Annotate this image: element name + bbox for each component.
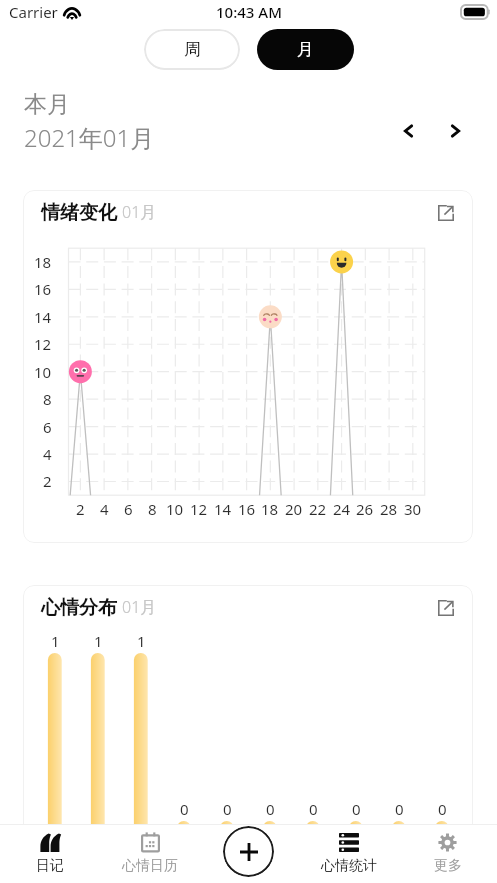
staticText: 16 xyxy=(34,279,52,299)
staticText: 1 xyxy=(51,631,60,651)
staticText: 8 xyxy=(148,499,157,519)
staticText: 12 xyxy=(190,499,208,519)
staticText: 01月 xyxy=(122,201,157,223)
button[interactable]: Open full screen xyxy=(434,201,458,225)
button[interactable]: 心情日历 xyxy=(100,824,200,883)
staticText: 周 xyxy=(184,39,201,60)
staticText: 26 xyxy=(356,499,374,519)
staticText: 0 xyxy=(309,799,318,819)
staticText: 0 xyxy=(395,799,404,819)
staticText: 4 xyxy=(43,444,52,464)
staticText: 1 xyxy=(94,631,103,651)
staticText: 更多 xyxy=(434,857,462,875)
button[interactable]: Next month xyxy=(442,118,468,144)
staticText: 月 xyxy=(297,39,314,60)
staticText: 0 xyxy=(438,799,447,819)
staticText: 30 xyxy=(404,499,422,519)
staticText: 18 xyxy=(261,499,279,519)
staticText: 心情日历 xyxy=(122,857,178,875)
staticText: 18 xyxy=(34,252,52,272)
staticText: 0 xyxy=(352,799,361,819)
staticText: 10 xyxy=(34,362,52,382)
staticText: 14 xyxy=(214,499,232,519)
staticText: 0 xyxy=(266,799,275,819)
staticText: 20 xyxy=(285,499,303,519)
staticText: 01月 xyxy=(122,596,157,618)
button[interactable]: Add entry xyxy=(223,826,274,877)
staticText: 心情统计 xyxy=(321,857,377,875)
staticText: 8 xyxy=(43,389,52,409)
staticText: 28 xyxy=(380,499,398,519)
button[interactable]: 日记 xyxy=(0,824,100,883)
staticText: 10:43 AM xyxy=(216,2,282,22)
staticText: 10 xyxy=(166,499,184,519)
button[interactable]: 月 xyxy=(257,29,354,70)
button[interactable]: 更多 xyxy=(398,824,497,883)
staticText: 6 xyxy=(124,499,133,519)
staticText: 心情分布 xyxy=(41,596,117,620)
staticText: 日记 xyxy=(36,857,64,875)
staticText: 6 xyxy=(43,417,52,437)
staticText: 情绪变化 xyxy=(41,201,117,225)
staticText: 2021年01月 xyxy=(24,121,155,154)
staticText: Carrier xyxy=(9,2,58,22)
staticText: 0 xyxy=(223,799,232,819)
staticText: 0 xyxy=(180,799,189,819)
button[interactable]: Open full screen xyxy=(434,596,458,620)
button[interactable]: 周 xyxy=(144,29,240,70)
staticText: 12 xyxy=(34,334,52,354)
staticText: 22 xyxy=(309,499,327,519)
staticText: 本月 xyxy=(24,90,70,119)
button[interactable]: 心情统计 xyxy=(299,824,398,883)
staticText: 1 xyxy=(137,631,146,651)
staticText: 2 xyxy=(76,499,85,519)
staticText: 4 xyxy=(100,499,109,519)
staticText: 24 xyxy=(333,499,351,519)
staticText: 2 xyxy=(43,471,52,491)
staticText: 14 xyxy=(34,307,52,327)
button[interactable]: Previous month xyxy=(395,118,421,144)
staticText: 16 xyxy=(238,499,256,519)
